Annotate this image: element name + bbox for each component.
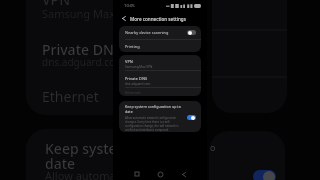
staticText: Ethernet xyxy=(42,87,99,106)
staticText: Allow automatic xyxy=(45,168,128,180)
staticText: Nearby device scanning xyxy=(125,30,169,35)
staticText: dns.adguard.com xyxy=(42,55,125,69)
button[interactable]: Switch on xyxy=(187,115,196,120)
staticText: VPN xyxy=(42,0,71,9)
staticText: Ethernet xyxy=(125,90,141,95)
button[interactable]: Nearby device scanning xyxy=(119,26,201,39)
button[interactable]: Printing xyxy=(119,40,201,52)
staticText: Private DNS xyxy=(42,40,122,59)
staticText: Samsung Max VPN xyxy=(125,65,153,69)
staticText: date xyxy=(45,154,76,173)
staticText: Printing xyxy=(125,44,140,49)
button[interactable]: Keep system configuration up to date xyxy=(119,101,201,132)
staticText: Allow automatic network configuration ch… xyxy=(125,116,181,132)
staticText: 10:05 xyxy=(124,3,135,9)
button[interactable]: Ethernet xyxy=(119,88,201,96)
staticText: Keep system configuration up to date xyxy=(125,104,181,114)
staticText: Samsung Max V xyxy=(42,6,125,21)
button[interactable]: Home xyxy=(154,168,166,180)
button[interactable]: Back xyxy=(117,13,130,24)
button[interactable]: Private DNS xyxy=(119,71,201,87)
staticText: More connection settings xyxy=(130,16,186,22)
button[interactable]: Recent apps xyxy=(131,168,143,180)
staticText: dns.adguard.com xyxy=(125,82,151,86)
staticText: Private DNS xyxy=(125,76,148,81)
button[interactable]: Back xyxy=(178,168,190,180)
staticText: Keep systen xyxy=(45,139,126,158)
button[interactable]: Switch off xyxy=(187,30,196,35)
staticText: o xyxy=(210,141,216,153)
button[interactable]: VPN xyxy=(119,55,201,70)
staticText: VPN xyxy=(125,59,133,64)
